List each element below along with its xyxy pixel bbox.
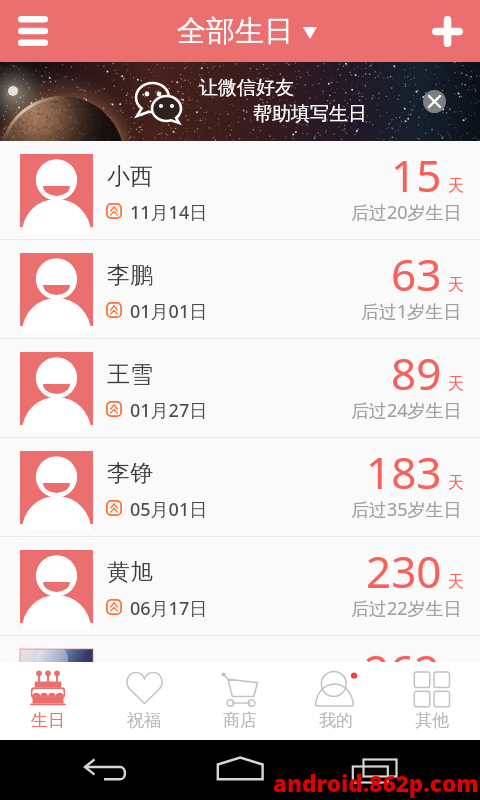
staticText: 李鹏	[107, 261, 153, 290]
staticText: 天	[448, 176, 464, 196]
button[interactable]: 李铮	[0, 438, 480, 537]
button[interactable]: Menu	[0, 0, 66, 62]
staticText: 11月14日	[130, 200, 208, 225]
staticText: 全部生日	[177, 13, 293, 50]
button[interactable]: Recent apps	[351, 758, 399, 783]
button[interactable]: Home	[216, 756, 265, 781]
staticText: 商店	[223, 710, 257, 731]
staticText: 天	[448, 374, 464, 394]
staticText: 后过1岁生日	[361, 299, 462, 324]
staticText: 后过35岁生日	[351, 497, 462, 522]
button[interactable]: 262	[0, 636, 480, 662]
staticText: 生日	[31, 710, 65, 731]
button[interactable]: 祝福	[96, 662, 192, 740]
staticText: 李铮	[107, 459, 153, 488]
staticText: 天	[448, 275, 464, 295]
staticText: 后过24岁生日	[351, 398, 462, 423]
button[interactable]: 我的	[288, 662, 384, 740]
staticText: 其他	[415, 710, 449, 731]
staticText: 黄旭	[107, 558, 153, 587]
button[interactable]: 李鹏	[0, 240, 480, 339]
staticText: 王雪	[107, 360, 153, 389]
staticText: 15	[391, 145, 442, 205]
button[interactable]: 黄旭	[0, 537, 480, 636]
staticText: 05月01日	[130, 497, 208, 522]
staticText: 我的	[319, 710, 353, 731]
button[interactable]: Add birthday	[414, 0, 480, 62]
staticText: 后过20岁生日	[351, 200, 462, 225]
button[interactable]: 让微信好友	[0, 62, 480, 141]
staticText: 262	[364, 640, 440, 662]
button[interactable]: 王雪	[0, 339, 480, 438]
staticText: 89	[391, 343, 442, 403]
staticText: 小西	[107, 162, 153, 191]
button[interactable]: 其他	[384, 662, 480, 740]
staticText: 天	[448, 572, 464, 592]
staticText: 天	[448, 473, 464, 493]
button[interactable]: 商店	[192, 662, 288, 740]
staticText: 帮助填写生日	[253, 102, 367, 126]
staticText: 祝福	[127, 710, 161, 731]
staticText: 06月17日	[130, 596, 208, 621]
staticText: 63	[391, 244, 442, 304]
button[interactable]: 小西	[0, 141, 480, 240]
button[interactable]: 全部生日	[177, 13, 317, 50]
staticText: 让微信好友	[199, 76, 294, 100]
staticText: android.862p.com	[273, 768, 479, 799]
staticText: 01月01日	[130, 299, 208, 324]
button[interactable]: Close ad	[423, 90, 446, 113]
button[interactable]: 生日	[0, 662, 96, 740]
staticText: 01月27日	[130, 398, 208, 423]
button[interactable]: Back	[83, 758, 129, 782]
staticText: 183	[366, 442, 442, 502]
staticText: 后过22岁生日	[351, 596, 462, 621]
staticText: 230	[366, 541, 442, 601]
